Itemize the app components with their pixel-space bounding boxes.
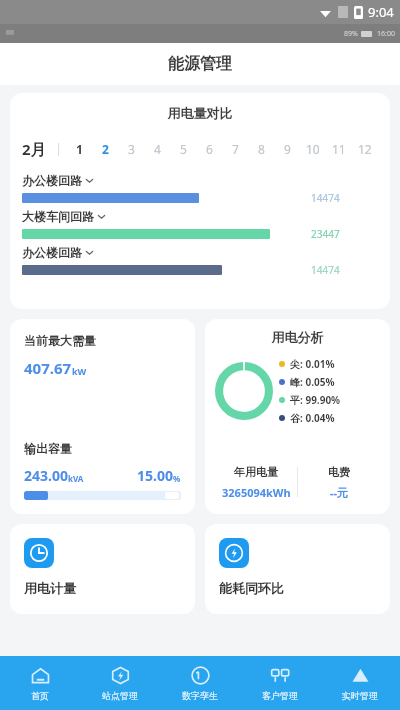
staticText: %: [173, 473, 181, 484]
staticText: 4: [154, 141, 161, 157]
staticText: 谷: 0.04%: [290, 411, 335, 425]
button[interactable]: 实时管理: [320, 656, 400, 710]
staticText: 5: [180, 141, 187, 157]
staticText: 12: [358, 141, 372, 157]
staticText: 407.67: [24, 358, 72, 378]
staticText: 2: [102, 141, 109, 157]
staticText: 6: [206, 141, 213, 157]
button[interactable]: 客户管理: [240, 656, 320, 710]
staticText: 14474: [311, 191, 340, 205]
staticText: 输出容量: [24, 441, 72, 456]
button[interactable]: 用电计量: [10, 524, 195, 614]
staticText: 243.00: [24, 466, 68, 485]
staticText: 9:04: [368, 3, 394, 21]
staticText: 9: [284, 141, 291, 157]
staticText: kVA: [68, 473, 84, 484]
staticText: 峰: 0.05%: [290, 375, 335, 389]
button[interactable]: 首页: [0, 656, 80, 710]
staticText: 1: [76, 141, 83, 157]
staticText: 14474: [311, 263, 340, 277]
button[interactable]: 5: [170, 141, 196, 157]
button[interactable]: 8: [248, 141, 274, 157]
staticText: --元: [330, 485, 349, 500]
button[interactable]: 6: [196, 141, 222, 157]
button[interactable]: 3: [118, 141, 144, 157]
staticText: 用电量对比: [10, 105, 390, 121]
staticText: 大楼车间回路: [22, 209, 94, 224]
button[interactable]: 数字孪生: [160, 656, 240, 710]
staticText: 2月: [22, 139, 46, 159]
button[interactable]: 大楼车间回路: [22, 209, 106, 224]
button[interactable]: 办公楼回路: [22, 245, 94, 260]
staticText: 电费: [328, 465, 350, 479]
staticText: 数字孪生: [182, 690, 218, 701]
staticText: 16:00: [377, 29, 395, 39]
button[interactable]: 1: [67, 141, 92, 157]
staticText: 实时管理: [342, 690, 378, 701]
staticText: 3265094kWh: [222, 485, 291, 500]
button[interactable]: 用电分析: [205, 319, 390, 514]
staticText: 用电计量: [24, 580, 76, 596]
staticText: 11: [332, 141, 346, 157]
button[interactable]: 2: [92, 141, 118, 157]
staticText: 用电分析: [215, 329, 380, 345]
staticText: 办公楼回路: [22, 173, 82, 188]
staticText: 客户管理: [262, 690, 298, 701]
button[interactable]: 9: [274, 141, 300, 157]
button[interactable]: 12: [352, 141, 378, 157]
staticText: 8: [258, 141, 265, 157]
staticText: 能源管理: [168, 54, 232, 74]
staticText: 15.00: [137, 466, 173, 485]
staticText: 站点管理: [102, 690, 138, 701]
staticText: 办公楼回路: [22, 245, 82, 260]
staticText: 89%: [344, 29, 358, 39]
button[interactable]: 4: [144, 141, 170, 157]
button[interactable]: 能耗同环比: [205, 524, 390, 614]
staticText: kW: [72, 365, 87, 377]
other: 能耗同环比: [219, 538, 249, 568]
staticText: 3: [128, 141, 135, 157]
button[interactable]: 办公楼回路: [22, 173, 94, 188]
button[interactable]: 7: [222, 141, 248, 157]
button[interactable]: 11: [326, 141, 352, 157]
staticText: 10: [306, 141, 320, 157]
button[interactable]: 用电量对比: [10, 93, 390, 309]
staticText: 尖: 0.01%: [290, 357, 335, 371]
staticText: 能耗同环比: [219, 580, 284, 596]
button[interactable]: 站点管理: [80, 656, 160, 710]
staticText: 平: 99.90%: [290, 393, 341, 407]
staticText: 7: [232, 141, 239, 157]
staticText: 当前最大需量: [24, 333, 96, 348]
staticText: 年用电量: [234, 465, 278, 479]
button[interactable]: 当前最大需量: [10, 319, 195, 514]
staticText: 首页: [31, 690, 49, 701]
other: 用电计量: [24, 538, 54, 568]
staticText: 23447: [311, 227, 340, 241]
button[interactable]: 10: [300, 141, 326, 157]
